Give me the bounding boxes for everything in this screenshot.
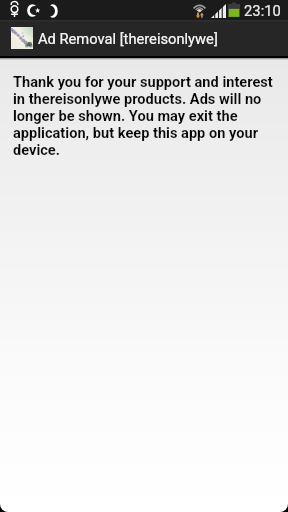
staticText: 23:10	[244, 2, 281, 19]
staticText: Thank you for your support and interest …	[13, 74, 279, 159]
staticText: Ad Removal [thereisonlywe]	[38, 30, 218, 47]
other: Mobile signal	[211, 4, 226, 18]
other: Notification	[48, 4, 58, 18]
other: Wi-Fi	[192, 2, 207, 18]
button[interactable]: App icon, navigate up	[0, 20, 288, 56]
other: Notification	[27, 4, 40, 17]
other: App icon, navigate up	[11, 27, 33, 49]
other: Battery	[228, 2, 240, 18]
other: Notification	[10, 3, 19, 17]
